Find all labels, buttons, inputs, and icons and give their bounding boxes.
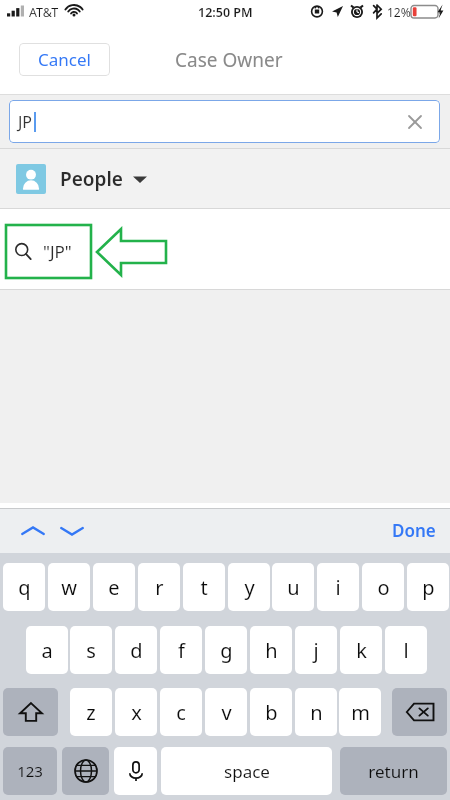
staticText: 123 (17, 761, 43, 781)
button[interactable]: o (362, 563, 404, 611)
button[interactable]: g (205, 626, 247, 674)
staticText: space (224, 760, 270, 783)
staticText: t (200, 574, 208, 601)
staticText: k (356, 637, 367, 664)
staticText: s (86, 637, 96, 664)
staticText: x (131, 699, 142, 726)
button[interactable]: space (161, 747, 332, 795)
button[interactable]: u (272, 563, 314, 611)
staticText: p (422, 574, 435, 601)
button[interactable]: t (183, 563, 225, 611)
staticText: Cancel (38, 48, 91, 71)
staticText: e (108, 574, 120, 601)
staticText: w (61, 574, 77, 601)
staticText: o (377, 574, 390, 601)
button[interactable]: e (93, 563, 135, 611)
button[interactable]: Backspace (392, 688, 447, 736)
button[interactable]: a (26, 626, 68, 674)
button[interactable]: Next field (57, 516, 87, 546)
staticText: a (41, 637, 53, 664)
button[interactable]: People (0, 149, 450, 208)
button[interactable]: z (70, 688, 112, 736)
button[interactable]: c (160, 688, 202, 736)
staticText: b (265, 699, 278, 726)
staticText: People (60, 166, 123, 192)
staticText: 12% (387, 4, 411, 20)
staticText: n (310, 699, 323, 726)
button[interactable]: q (3, 563, 45, 611)
button[interactable]: return (340, 747, 447, 795)
button[interactable]: f (160, 626, 202, 674)
button[interactable]: JP (9, 100, 440, 143)
staticText: j (313, 637, 319, 664)
button[interactable]: d (115, 626, 157, 674)
staticText: Done (392, 519, 436, 542)
button[interactable]: n (295, 688, 337, 736)
staticText: g (220, 637, 233, 664)
staticText: i (335, 574, 341, 601)
button[interactable]: p (407, 563, 449, 611)
staticText: l (403, 637, 409, 664)
button[interactable]: "JP" (14, 226, 72, 276)
button[interactable]: x (115, 688, 157, 736)
button[interactable]: Previous field (18, 516, 48, 546)
button[interactable]: v (205, 688, 247, 736)
button[interactable]: h (250, 626, 292, 674)
button[interactable]: 123 (3, 747, 57, 795)
staticText: m (351, 699, 370, 726)
button[interactable]: s (70, 626, 112, 674)
staticText: d (130, 637, 143, 664)
staticText: y (244, 574, 255, 601)
staticText: c (176, 699, 186, 726)
button[interactable]: Cancel (19, 43, 110, 76)
button[interactable]: i (317, 563, 359, 611)
button[interactable]: Clear text (404, 111, 426, 133)
button[interactable]: Done (392, 519, 436, 542)
button[interactable]: b (250, 688, 292, 736)
button[interactable]: m (339, 688, 381, 736)
staticText: z (86, 699, 96, 726)
staticText: return (368, 760, 419, 783)
staticText: "JP" (43, 240, 72, 263)
button[interactable]: y (228, 563, 270, 611)
button[interactable]: Switch keyboard (62, 747, 109, 795)
staticText: r (155, 574, 164, 601)
staticText: f (178, 637, 185, 664)
button[interactable]: Shift (3, 688, 58, 736)
staticText: u (287, 574, 300, 601)
button[interactable]: w (48, 563, 90, 611)
staticText: JP (18, 111, 33, 133)
button[interactable]: Dictation (114, 747, 157, 795)
staticText: Case Owner (175, 47, 283, 73)
staticText: AT&T (29, 4, 59, 21)
staticText: h (265, 637, 278, 664)
staticText: 12:50 PM (198, 4, 253, 21)
staticText: v (221, 699, 232, 726)
button[interactable]: r (138, 563, 180, 611)
button[interactable]: j (295, 626, 337, 674)
button[interactable]: k (340, 626, 382, 674)
button[interactable]: l (385, 626, 427, 674)
staticText: q (18, 574, 31, 601)
